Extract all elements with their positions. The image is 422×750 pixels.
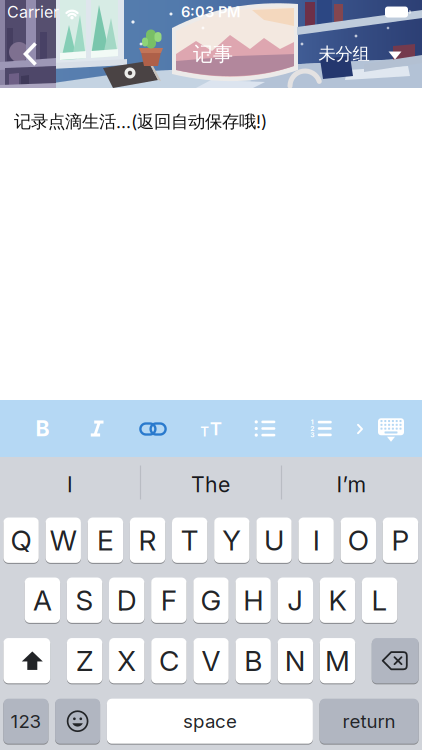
staticText: B	[244, 644, 262, 677]
staticText: 记事	[193, 42, 233, 66]
staticText: 123	[10, 710, 41, 732]
staticText: 3	[310, 431, 314, 439]
staticText: 1	[311, 418, 314, 426]
staticText: D	[117, 584, 137, 617]
staticText: I	[67, 472, 73, 497]
staticText: T	[181, 524, 199, 557]
staticText: A	[33, 584, 52, 617]
staticText: I	[313, 524, 320, 557]
staticText: J	[287, 584, 303, 617]
staticText: O	[348, 524, 369, 557]
staticText: N	[285, 644, 306, 677]
staticText: I’m	[336, 472, 366, 497]
staticText: 2	[310, 425, 314, 432]
staticText: 6:03 PM	[181, 3, 241, 21]
staticText: T	[210, 417, 222, 439]
staticText: L	[372, 584, 388, 617]
staticText: E	[97, 524, 114, 557]
staticText: R	[138, 524, 156, 557]
staticText: The	[191, 472, 230, 497]
staticText: Z	[76, 644, 93, 677]
staticText: U	[264, 524, 284, 557]
staticText: V	[201, 644, 220, 677]
staticText: X	[117, 644, 136, 677]
staticText: return	[343, 710, 396, 732]
staticText: F	[161, 584, 177, 617]
staticText: S	[75, 584, 93, 617]
staticText: K	[328, 584, 346, 617]
staticText: 记录点滴生活...(返回自动保存哦!)	[14, 111, 267, 132]
staticText: G	[200, 584, 221, 617]
staticText: Carrier	[7, 3, 59, 21]
staticText: Y	[222, 524, 241, 557]
staticText: space	[183, 710, 237, 732]
staticText: M	[325, 644, 350, 677]
staticText: H	[243, 584, 263, 617]
staticText: Q	[11, 524, 32, 557]
staticText: 未分组	[318, 43, 369, 65]
staticText: C	[159, 644, 179, 677]
staticText: W	[50, 524, 77, 557]
staticText: P	[391, 524, 409, 557]
staticText: T	[200, 424, 209, 439]
staticText: B	[35, 416, 49, 441]
